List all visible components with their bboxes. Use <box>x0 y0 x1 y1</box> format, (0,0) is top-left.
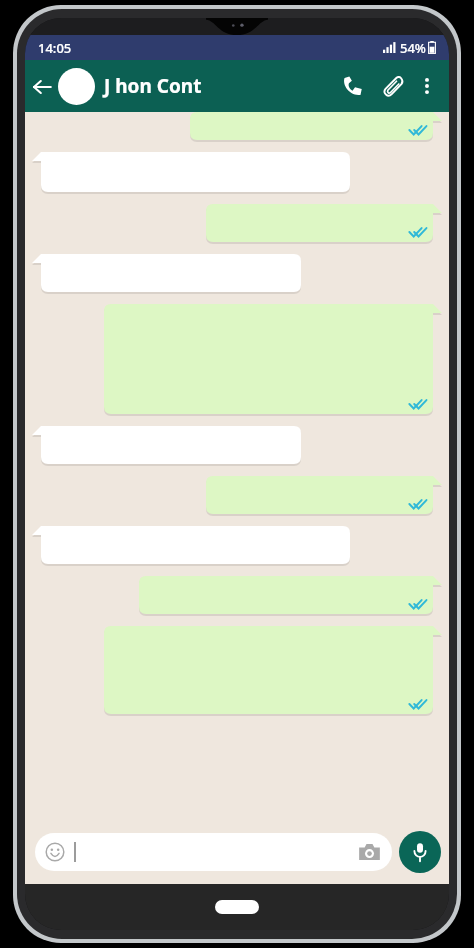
button[interactable]: Contact photo <box>58 68 95 105</box>
button[interactable]: Home <box>215 900 259 914</box>
button[interactable] <box>206 204 442 244</box>
staticText: 54% <box>400 39 426 57</box>
staticText: J hon Cont <box>104 73 202 99</box>
button[interactable] <box>104 304 442 416</box>
button[interactable] <box>190 112 442 142</box>
button[interactable]: Camera <box>35 833 392 871</box>
button[interactable]: Camera <box>356 839 382 865</box>
button[interactable] <box>139 576 442 616</box>
button[interactable] <box>32 426 301 466</box>
button[interactable] <box>32 526 350 566</box>
button[interactable]: Attach <box>372 67 411 106</box>
button[interactable] <box>104 626 442 716</box>
button[interactable] <box>32 254 301 294</box>
button[interactable]: More options <box>411 70 443 102</box>
staticText: 14:05 <box>38 39 72 57</box>
button[interactable]: Record voice message <box>399 831 441 873</box>
button[interactable] <box>206 476 442 516</box>
button[interactable] <box>32 152 350 194</box>
button[interactable]: J hon Cont <box>104 73 333 99</box>
button[interactable]: Call <box>333 67 372 106</box>
button[interactable]: Back <box>25 70 58 103</box>
